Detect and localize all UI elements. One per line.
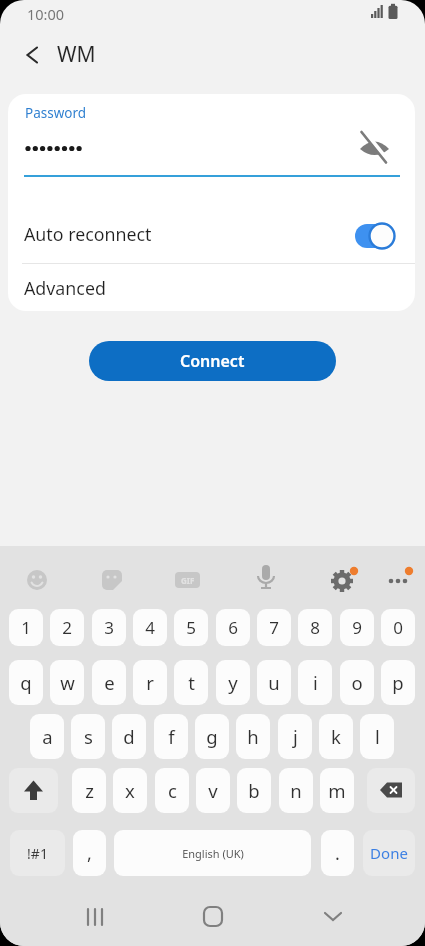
- button[interactable]: z: [72, 768, 106, 813]
- button[interactable]: t: [174, 660, 208, 705]
- staticText: n: [290, 778, 302, 803]
- button[interactable]: n: [279, 768, 313, 813]
- staticText: q: [20, 670, 32, 695]
- button[interactable]: y: [216, 660, 250, 705]
- button[interactable]: [188, 896, 238, 938]
- button[interactable]: .: [321, 830, 354, 876]
- staticText: x: [125, 778, 135, 803]
- button[interactable]: ,: [73, 830, 106, 876]
- button[interactable]: v: [196, 768, 230, 813]
- staticText: p: [392, 670, 404, 695]
- staticText: d: [123, 724, 135, 749]
- staticText: s: [84, 724, 93, 749]
- staticText: Advanced: [24, 276, 106, 300]
- button[interactable]: Done: [363, 830, 415, 876]
- staticText: f: [168, 724, 175, 749]
- staticText: o: [351, 670, 363, 695]
- button[interactable]: q: [9, 660, 43, 705]
- button[interactable]: u: [257, 660, 291, 705]
- staticText: i: [313, 670, 318, 695]
- staticText: WM: [57, 40, 96, 69]
- button[interactable]: !#1: [10, 830, 65, 876]
- button[interactable]: Auto reconnect: [8, 204, 415, 263]
- staticText: Done: [370, 843, 408, 863]
- button[interactable]: 7: [257, 609, 291, 646]
- button[interactable]: [14, 38, 50, 72]
- staticText: c: [168, 778, 177, 803]
- staticText: Connect: [180, 350, 245, 372]
- staticText: 0: [393, 616, 403, 639]
- staticText: l: [375, 724, 380, 749]
- button[interactable]: 5: [174, 609, 208, 646]
- button[interactable]: p: [381, 660, 415, 705]
- button[interactable]: [70, 896, 120, 938]
- button[interactable]: Advanced: [8, 264, 415, 311]
- staticText: Auto reconnect: [24, 222, 152, 246]
- button[interactable]: e: [92, 660, 126, 705]
- staticText: 5: [186, 616, 196, 639]
- button[interactable]: s: [71, 714, 105, 759]
- staticText: 3: [104, 616, 114, 639]
- staticText: 1: [21, 616, 31, 639]
- button[interactable]: [322, 561, 362, 601]
- staticText: 8: [310, 616, 320, 639]
- button[interactable]: g: [195, 714, 229, 759]
- button[interactable]: b: [237, 768, 271, 813]
- staticText: GIF: [181, 575, 195, 586]
- staticText: j: [293, 724, 298, 749]
- button[interactable]: 1: [9, 609, 43, 646]
- button[interactable]: x: [113, 768, 147, 813]
- staticText: w: [60, 670, 75, 695]
- staticText: h: [247, 724, 259, 749]
- button[interactable]: l: [360, 714, 394, 759]
- button[interactable]: [367, 768, 415, 813]
- button[interactable]: 6: [216, 609, 250, 646]
- button[interactable]: o: [340, 660, 374, 705]
- button[interactable]: f: [154, 714, 188, 759]
- button[interactable]: k: [319, 714, 353, 759]
- staticText: b: [248, 778, 260, 803]
- staticText: k: [331, 724, 341, 749]
- staticText: u: [268, 670, 280, 695]
- button[interactable]: r: [133, 660, 167, 705]
- button[interactable]: [308, 896, 358, 938]
- button[interactable]: [17, 560, 57, 600]
- button[interactable]: 3: [92, 609, 126, 646]
- button[interactable]: a: [30, 714, 64, 759]
- staticText: v: [208, 778, 218, 803]
- staticText: t: [188, 670, 195, 695]
- staticText: z: [85, 778, 94, 803]
- button[interactable]: [92, 560, 132, 600]
- staticText: 9: [352, 616, 362, 639]
- button[interactable]: GIF: [175, 572, 200, 588]
- staticText: .: [335, 841, 340, 866]
- button[interactable]: [352, 124, 396, 170]
- staticText: !#1: [27, 844, 48, 863]
- button[interactable]: i: [298, 660, 332, 705]
- button[interactable]: 9: [340, 609, 374, 646]
- button[interactable]: 0: [381, 609, 415, 646]
- staticText: Password: [25, 104, 87, 122]
- staticText: e: [104, 670, 115, 695]
- button[interactable]: 8: [298, 609, 332, 646]
- button[interactable]: h: [236, 714, 270, 759]
- staticText: r: [146, 670, 154, 695]
- button[interactable]: c: [155, 768, 189, 813]
- staticText: 4: [145, 616, 155, 639]
- staticText: a: [42, 724, 53, 749]
- button[interactable]: [9, 768, 58, 813]
- staticText: 6: [228, 616, 238, 639]
- button[interactable]: j: [278, 714, 312, 759]
- staticText: ,: [87, 841, 92, 866]
- button[interactable]: 2: [50, 609, 84, 646]
- button[interactable]: Connect: [89, 341, 336, 381]
- button[interactable]: m: [320, 768, 354, 813]
- button[interactable]: 4: [133, 609, 167, 646]
- button[interactable]: [246, 559, 286, 599]
- button[interactable]: d: [112, 714, 146, 759]
- button[interactable]: [378, 561, 418, 601]
- staticText: English (UK): [182, 846, 244, 861]
- staticText: m: [328, 778, 346, 803]
- button[interactable]: w: [50, 660, 84, 705]
- button[interactable]: English (UK): [114, 830, 311, 876]
